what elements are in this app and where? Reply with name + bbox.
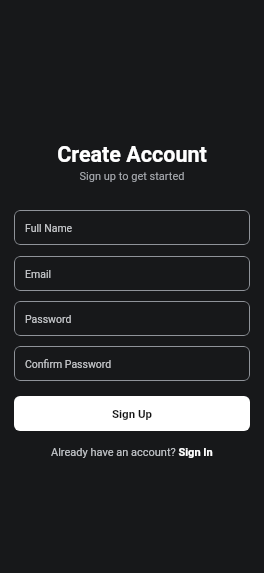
- other: Create Account screen: [0, 0, 264, 573]
- button[interactable]: Already have an account? Sign In: [51, 446, 213, 459]
- staticText: Password: [25, 313, 72, 325]
- button[interactable]: Confirm Password: [14, 346, 250, 381]
- button[interactable]: Full Name: [14, 210, 250, 245]
- staticText: Confirm Password: [25, 358, 112, 370]
- staticText: Sign up to get started: [0, 170, 264, 183]
- staticText: Create Account: [0, 142, 264, 167]
- staticText: Full Name: [25, 222, 73, 234]
- button[interactable]: Email: [14, 256, 250, 291]
- button[interactable]: Sign Up: [14, 396, 250, 431]
- staticText: Already have an account? Sign In: [51, 446, 213, 459]
- staticText: Sign Up: [112, 407, 153, 420]
- staticText: Email: [25, 268, 51, 280]
- button[interactable]: Password: [14, 301, 250, 336]
